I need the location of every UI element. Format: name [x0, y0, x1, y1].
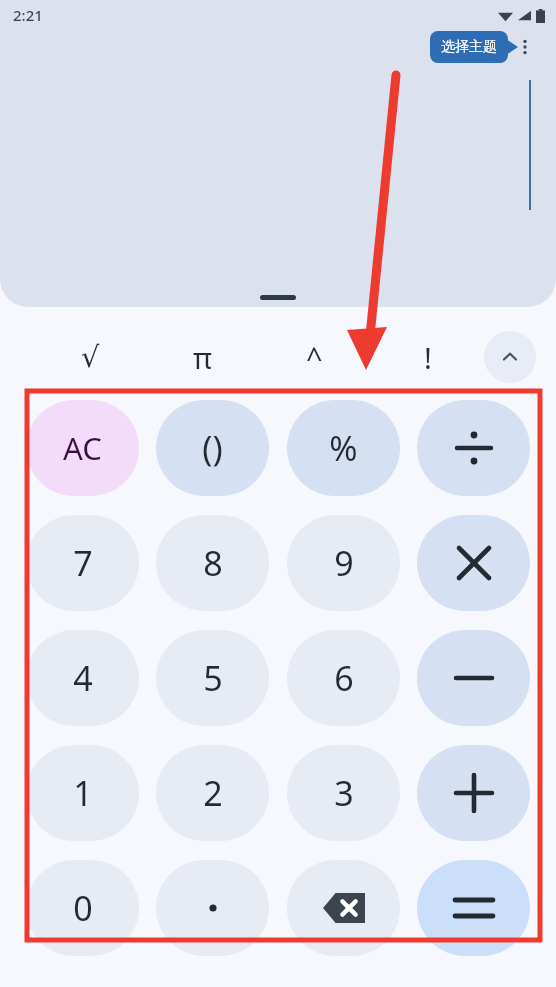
- button[interactable]: 3: [287, 745, 400, 841]
- staticText: 0: [73, 885, 93, 931]
- staticText: π: [193, 338, 212, 377]
- button[interactable]: 8: [156, 515, 269, 611]
- button[interactable]: 2: [156, 745, 269, 841]
- button[interactable]: Backspace: [287, 860, 400, 956]
- button[interactable]: [417, 515, 530, 611]
- button[interactable]: 9: [287, 515, 400, 611]
- button[interactable]: 5: [156, 630, 269, 726]
- staticText: !: [424, 338, 432, 377]
- staticText: 8: [203, 540, 223, 586]
- button[interactable]: (): [156, 400, 269, 496]
- button[interactable]: [417, 400, 530, 496]
- button[interactable]: !: [371, 317, 484, 397]
- staticText: 4: [73, 655, 93, 701]
- staticText: AC: [63, 427, 102, 469]
- staticText: %: [329, 425, 358, 471]
- button[interactable]: 0: [26, 860, 139, 956]
- button[interactable]: [417, 745, 530, 841]
- staticText: √: [81, 340, 100, 374]
- staticText: 9: [334, 540, 354, 586]
- button[interactable]: 4: [26, 630, 139, 726]
- staticText: 选择主题: [441, 38, 497, 56]
- button[interactable]: %: [287, 400, 400, 496]
- button[interactable]: [417, 860, 530, 956]
- staticText: 6: [334, 655, 354, 701]
- button[interactable]: AC: [26, 400, 139, 496]
- button[interactable]: 1: [26, 745, 139, 841]
- button[interactable]: π: [146, 317, 258, 397]
- staticText: 1: [73, 770, 93, 816]
- staticText: 2:21: [13, 5, 43, 25]
- staticText: 3: [334, 770, 354, 816]
- button[interactable]: Collapse: [484, 331, 536, 383]
- staticText: 5: [203, 655, 223, 701]
- staticText: 7: [73, 540, 93, 586]
- button[interactable]: 选择主题: [430, 31, 508, 63]
- staticText: 2: [203, 770, 223, 816]
- button[interactable]: 6: [287, 630, 400, 726]
- staticText: (): [202, 425, 223, 471]
- button[interactable]: 7: [26, 515, 139, 611]
- button[interactable]: [156, 860, 269, 956]
- button[interactable]: √: [34, 317, 146, 397]
- staticText: ^: [306, 338, 323, 377]
- button[interactable]: [417, 630, 530, 726]
- button[interactable]: More options: [508, 30, 542, 64]
- button[interactable]: ^: [258, 317, 371, 397]
